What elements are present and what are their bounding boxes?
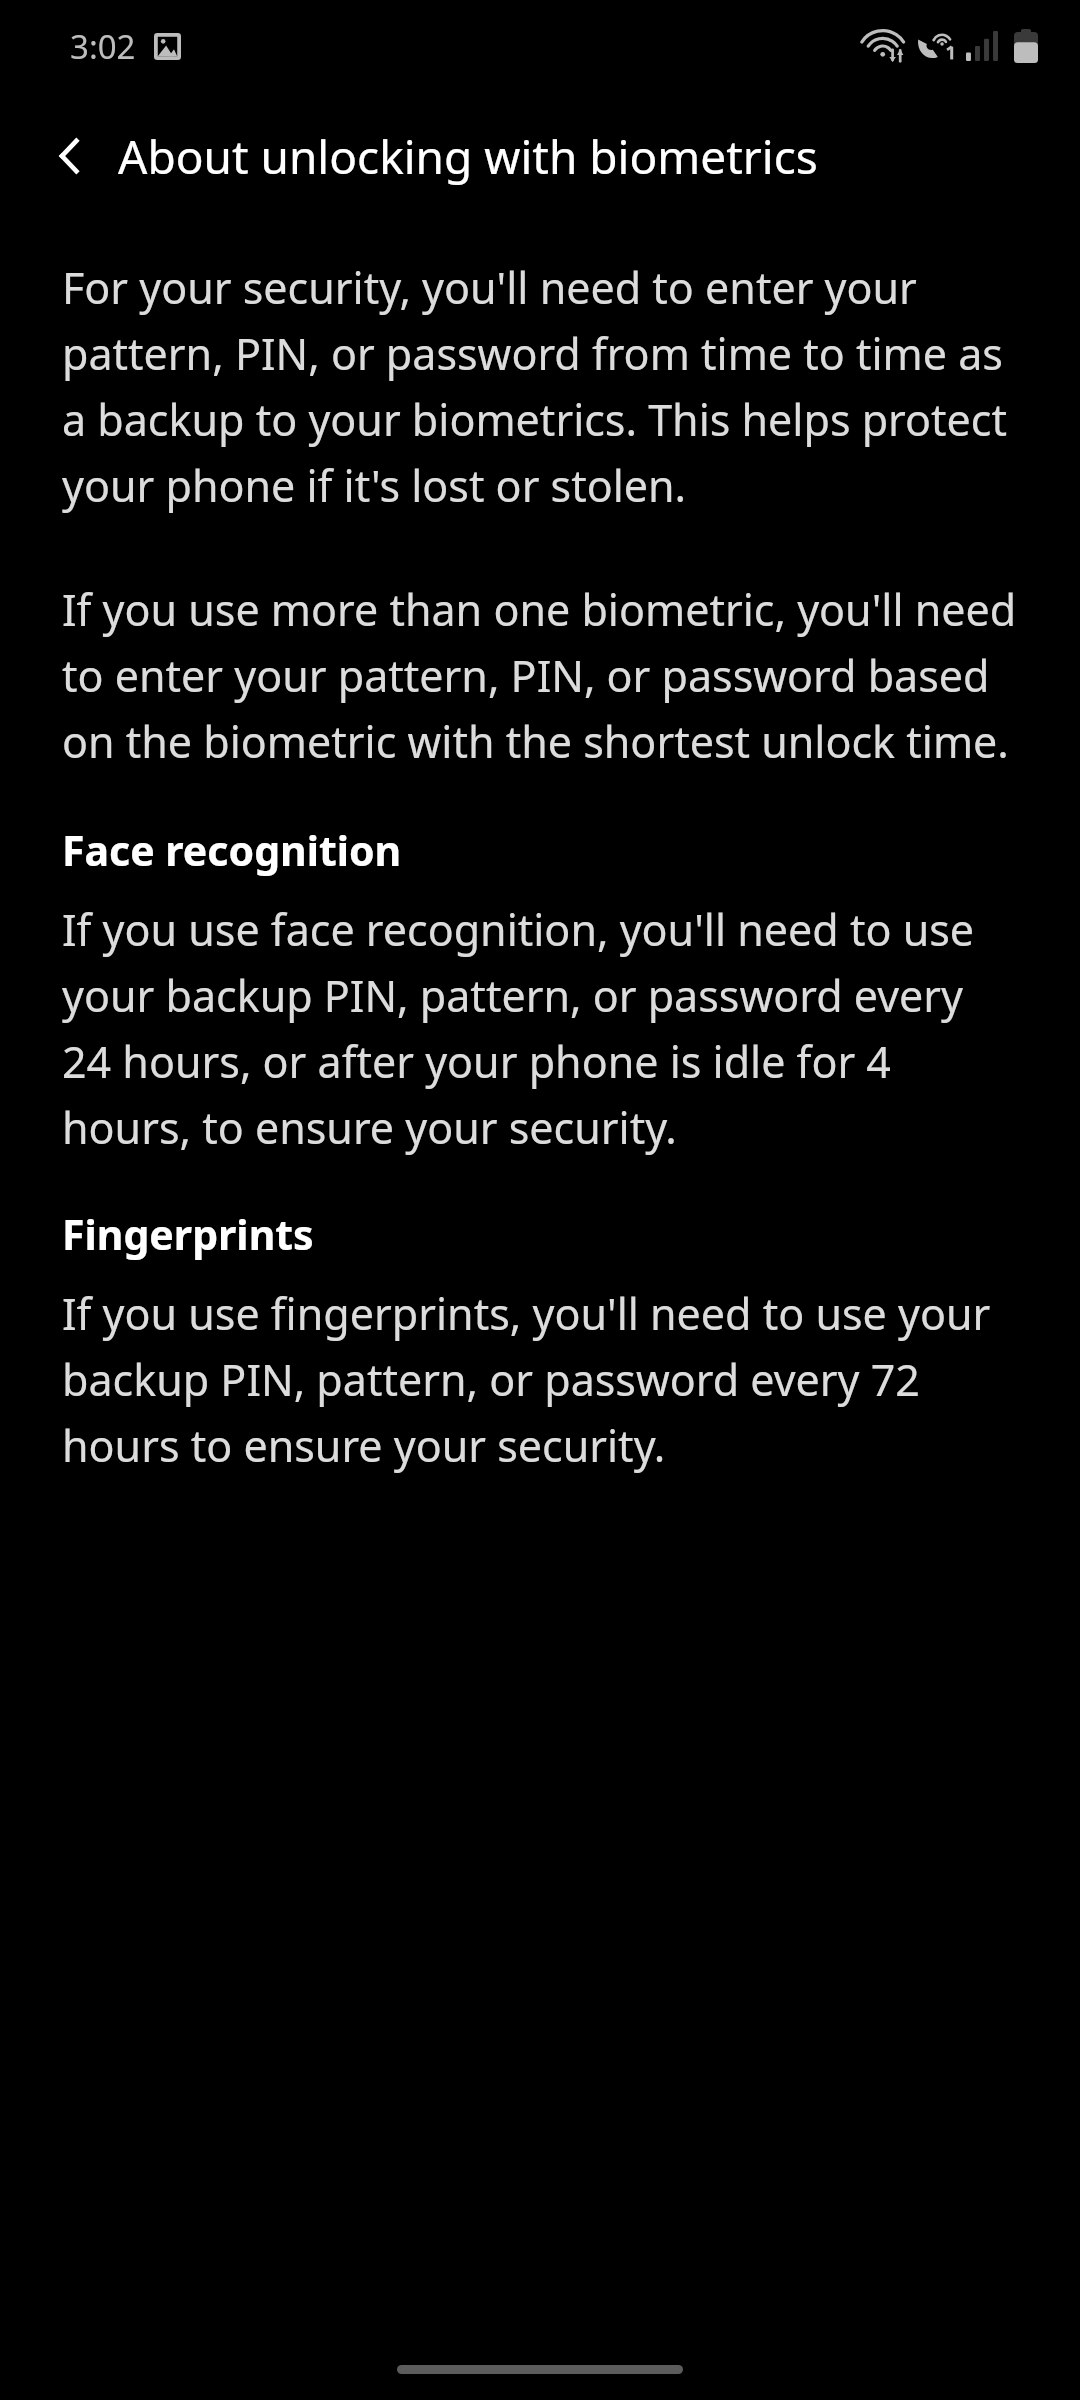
staticText: Face recognition — [62, 822, 402, 878]
staticText: For your security, you'll need to enter … — [62, 258, 1020, 514]
staticText: About unlocking with biometrics — [118, 125, 818, 188]
staticText: Fingerprints — [62, 1206, 314, 1262]
staticText: 3:02 — [70, 24, 136, 69]
staticText: If you use face recognition, you'll need… — [62, 900, 1020, 1156]
button[interactable]: Navigate up — [28, 114, 112, 198]
staticText: If you use more than one biometric, you'… — [62, 580, 1020, 770]
staticText: If you use fingerprints, you'll need to … — [62, 1284, 1020, 1474]
